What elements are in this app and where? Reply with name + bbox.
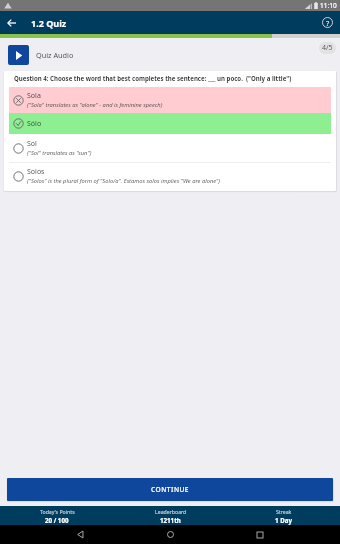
button[interactable]: Quiz Audio xyxy=(8,45,74,65)
button[interactable]: Streak xyxy=(227,506,340,525)
button[interactable]: Recents xyxy=(250,525,269,544)
button[interactable]: 4/5 xyxy=(319,42,336,54)
staticText: Leaderboard xyxy=(155,508,187,515)
staticText: Sola xyxy=(27,91,41,101)
staticText: ? xyxy=(326,18,330,28)
staticText: Solos xyxy=(27,167,45,177)
staticText: CONTINUE xyxy=(151,485,190,494)
staticText: 1 Day xyxy=(275,516,292,524)
staticText: ("Solos" is the plural form of "Solo/a".… xyxy=(27,177,221,185)
staticText: Sólo xyxy=(27,119,42,129)
button[interactable]: Help xyxy=(316,11,339,34)
button[interactable]: Back xyxy=(0,11,23,34)
staticText: 20 / 100 xyxy=(45,516,69,524)
button[interactable]: Today's Points xyxy=(0,506,114,525)
staticText: Today's Points xyxy=(40,508,75,515)
button[interactable]: Sólo xyxy=(9,113,331,134)
button[interactable]: Leaderboard xyxy=(114,506,227,525)
staticText: 1211th xyxy=(160,516,181,524)
staticText: Quiz Audio xyxy=(36,50,74,60)
staticText: Sol xyxy=(27,139,37,149)
button[interactable]: Solos xyxy=(9,163,331,189)
button[interactable]: Back xyxy=(71,525,90,544)
staticText: 1.2 Quiz xyxy=(31,17,67,29)
button[interactable]: Sol xyxy=(9,134,331,162)
staticText: Streak xyxy=(276,508,292,515)
staticText: Question 4: Choose the word that best co… xyxy=(14,74,292,82)
staticText: ("Sol" translates as "sun") xyxy=(27,149,92,157)
button[interactable]: Sola xyxy=(9,87,331,113)
button[interactable]: Home xyxy=(161,525,180,544)
staticText: 11:10 xyxy=(320,1,337,10)
staticText: 4/5 xyxy=(322,43,333,53)
staticText: ("Sola" translates as "alone" - and is f… xyxy=(27,101,163,109)
button[interactable]: CONTINUE xyxy=(7,478,333,501)
